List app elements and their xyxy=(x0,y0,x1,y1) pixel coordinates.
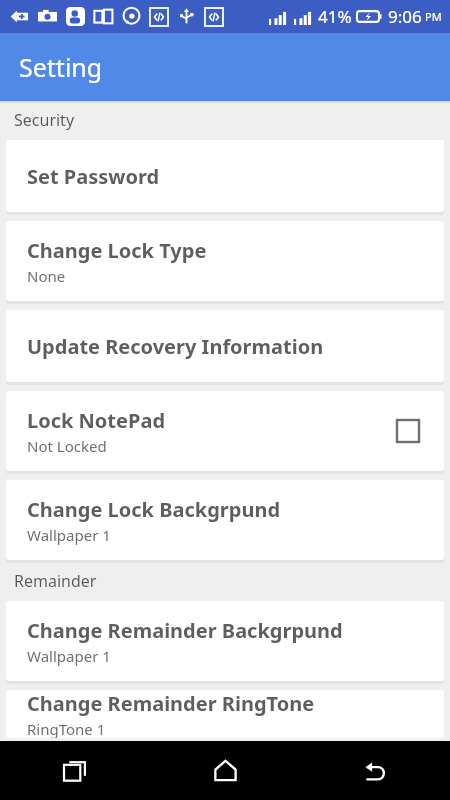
staticText: 41% xyxy=(318,5,352,28)
staticText: Remainder xyxy=(14,570,97,592)
staticText: Not Locked xyxy=(27,436,107,456)
button[interactable]: Recents xyxy=(0,741,150,800)
staticText: 9:06 xyxy=(388,5,422,28)
button[interactable]: Lock NotePad toggle xyxy=(393,416,423,446)
button[interactable]: Change Remainder RingTone xyxy=(6,690,444,738)
button[interactable]: Change Remainder Backgrpund xyxy=(6,601,444,681)
staticText: Security xyxy=(14,109,75,131)
button[interactable]: Home xyxy=(150,741,300,800)
staticText: Change Remainder Backgrpund xyxy=(27,617,343,644)
staticText: None xyxy=(27,266,66,286)
button[interactable]: Back xyxy=(300,741,450,800)
staticText: Setting xyxy=(19,50,103,84)
staticText: PM xyxy=(425,9,442,24)
button[interactable]: Update Recovery Information xyxy=(6,310,444,382)
staticText: Change Lock Type xyxy=(27,237,207,264)
staticText: Update Recovery Information xyxy=(27,333,324,360)
staticText: Change Remainder RingTone xyxy=(27,690,315,717)
staticText: RingTone 1 xyxy=(27,719,106,738)
staticText: Wallpaper 1 xyxy=(27,525,111,545)
staticText: Wallpaper 1 xyxy=(27,646,111,666)
button[interactable]: Change Lock Type xyxy=(6,221,444,301)
staticText: Lock NotePad xyxy=(27,407,166,434)
button[interactable]: Lock NotePad xyxy=(6,391,444,471)
staticText: Set Password xyxy=(27,163,160,190)
staticText: Change Lock Backgrpund xyxy=(27,496,281,523)
button[interactable]: Set Password xyxy=(6,140,444,212)
button[interactable]: Change Lock Backgrpund xyxy=(6,480,444,560)
